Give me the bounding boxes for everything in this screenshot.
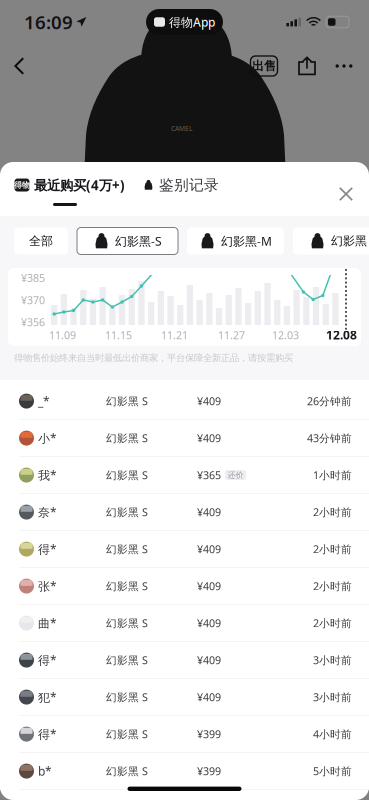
staticText: b* (38, 763, 52, 779)
staticText: 2小时前 (313, 579, 352, 593)
staticText: 11.15 (105, 328, 132, 342)
button[interactable]: 张* (0, 568, 369, 605)
staticText: 我* (38, 467, 57, 483)
staticText: ¥409 (197, 505, 221, 519)
staticText: 曲* (38, 615, 57, 631)
button[interactable]: More (325, 49, 363, 83)
button[interactable]: 得物 (0, 162, 125, 206)
staticText: 得物售价始终来自当时最低出价商家，平台保障全新正品，请按需购买 (14, 352, 293, 364)
staticText: ¥399 (197, 727, 221, 741)
button[interactable]: 曲* (0, 605, 369, 642)
staticText: 幻影黑 (331, 234, 367, 248)
staticText: _* (38, 393, 50, 409)
staticText: ¥399 (197, 764, 221, 778)
staticText: ¥356 (21, 315, 45, 329)
staticText: ¥409 (197, 579, 221, 593)
staticText: 幻影黑-M (221, 233, 272, 249)
staticText: 幻影黑 S (106, 690, 148, 704)
button[interactable]: Back (0, 46, 39, 86)
staticText: 11.21 (161, 328, 188, 342)
staticText: 犯* (38, 689, 57, 705)
staticText: 得* (38, 541, 57, 557)
button[interactable]: Sell (247, 50, 281, 82)
staticText: 幻影黑 S (106, 394, 148, 408)
staticText: 2小时前 (313, 542, 352, 556)
staticText: 幻影黑 S (106, 727, 148, 741)
staticText: 得物 (14, 180, 30, 190)
staticText: 幻影黑-S (115, 233, 162, 249)
staticText: 幻影黑 S (106, 505, 148, 519)
button[interactable]: _* (0, 383, 369, 420)
staticText: 2小时前 (313, 616, 352, 630)
staticText: 还价 (227, 470, 243, 480)
button[interactable]: 幻影黑-S (77, 227, 178, 254)
staticText: 得* (38, 652, 57, 668)
staticText: 11.09 (49, 328, 76, 342)
staticText: 最近购买(4万+) (34, 176, 125, 194)
staticText: ¥409 (197, 616, 221, 630)
staticText: 幻影黑 S (106, 431, 148, 445)
staticText: 3小时前 (313, 690, 352, 704)
staticText: 得* (38, 726, 57, 742)
staticText: CAMEL (171, 124, 193, 133)
staticText: 26分钟前 (307, 394, 352, 408)
staticText: ¥409 (197, 653, 221, 667)
staticText: 1小时前 (313, 468, 352, 482)
staticText: ¥409 (197, 394, 221, 408)
staticText: 3小时前 (313, 653, 352, 667)
button[interactable]: 小* (0, 420, 369, 457)
button[interactable]: 鉴别记录 (143, 162, 219, 194)
staticText: 张* (38, 578, 57, 594)
button[interactable]: 得* (0, 716, 369, 753)
button[interactable]: 得* (0, 531, 369, 568)
staticText: 11.27 (218, 328, 245, 342)
staticText: 12.03 (272, 328, 299, 342)
button[interactable]: 幻影黑-M (187, 227, 284, 254)
button[interactable]: 奈* (0, 494, 369, 531)
staticText: 小* (38, 430, 57, 446)
button[interactable]: 全部 (14, 227, 68, 254)
staticText: 4小时前 (313, 727, 352, 741)
button[interactable]: Close (324, 162, 368, 216)
staticText: 鉴别记录 (159, 176, 219, 194)
staticText: 全部 (29, 234, 53, 248)
staticText: ¥409 (197, 542, 221, 556)
staticText: 5小时前 (313, 764, 352, 778)
staticText: 奈* (38, 504, 57, 520)
staticText: ¥365 (197, 468, 221, 482)
staticText: ¥385 (21, 271, 45, 285)
staticText: 幻影黑 S (106, 764, 148, 778)
staticText: 幻影黑 S (106, 468, 148, 482)
button[interactable]: 我* (0, 457, 369, 494)
staticText: 得物App (169, 14, 215, 30)
staticText: 43分钟前 (307, 431, 352, 445)
staticText: 幻影黑 S (106, 542, 148, 556)
staticText: ¥409 (197, 690, 221, 704)
staticText: 2小时前 (313, 505, 352, 519)
staticText: 12.08 (326, 327, 357, 343)
staticText: 幻影黑 S (106, 616, 148, 630)
staticText: 出售 (252, 59, 276, 73)
staticText: 幻影黑 S (106, 653, 148, 667)
button[interactable]: 得* (0, 642, 369, 679)
staticText: ¥370 (21, 293, 45, 307)
staticText: 幻影黑 S (106, 579, 148, 593)
staticText: ¥409 (197, 431, 221, 445)
button[interactable]: b* (0, 753, 369, 790)
button[interactable]: 犯* (0, 679, 369, 716)
staticText: 16:09 (24, 10, 73, 34)
button[interactable]: 幻影黑 (293, 227, 369, 254)
button[interactable]: Share (289, 49, 325, 83)
